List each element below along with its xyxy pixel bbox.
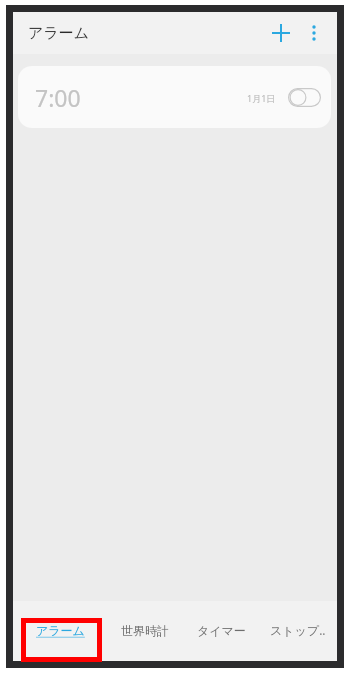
staticText: タイマー bbox=[197, 623, 246, 638]
button[interactable]: Alarm toggle, off bbox=[288, 88, 321, 107]
button[interactable]: タイマー bbox=[183, 615, 259, 645]
staticText: 世界時計 bbox=[121, 623, 169, 638]
staticText: 1月1日 bbox=[247, 92, 276, 104]
button[interactable]: ストップ.. bbox=[259, 615, 337, 645]
staticText: ストップ.. bbox=[270, 622, 326, 638]
staticText: アラーム bbox=[28, 24, 90, 43]
button[interactable]: More options bbox=[299, 18, 329, 48]
button[interactable]: アラーム bbox=[13, 615, 107, 645]
staticText: 7:00 bbox=[35, 82, 81, 113]
button[interactable]: Add alarm bbox=[263, 15, 299, 51]
staticText: アラーム bbox=[36, 623, 85, 638]
button[interactable]: 世界時計 bbox=[107, 615, 183, 645]
button[interactable]: 7:00 bbox=[18, 66, 331, 128]
